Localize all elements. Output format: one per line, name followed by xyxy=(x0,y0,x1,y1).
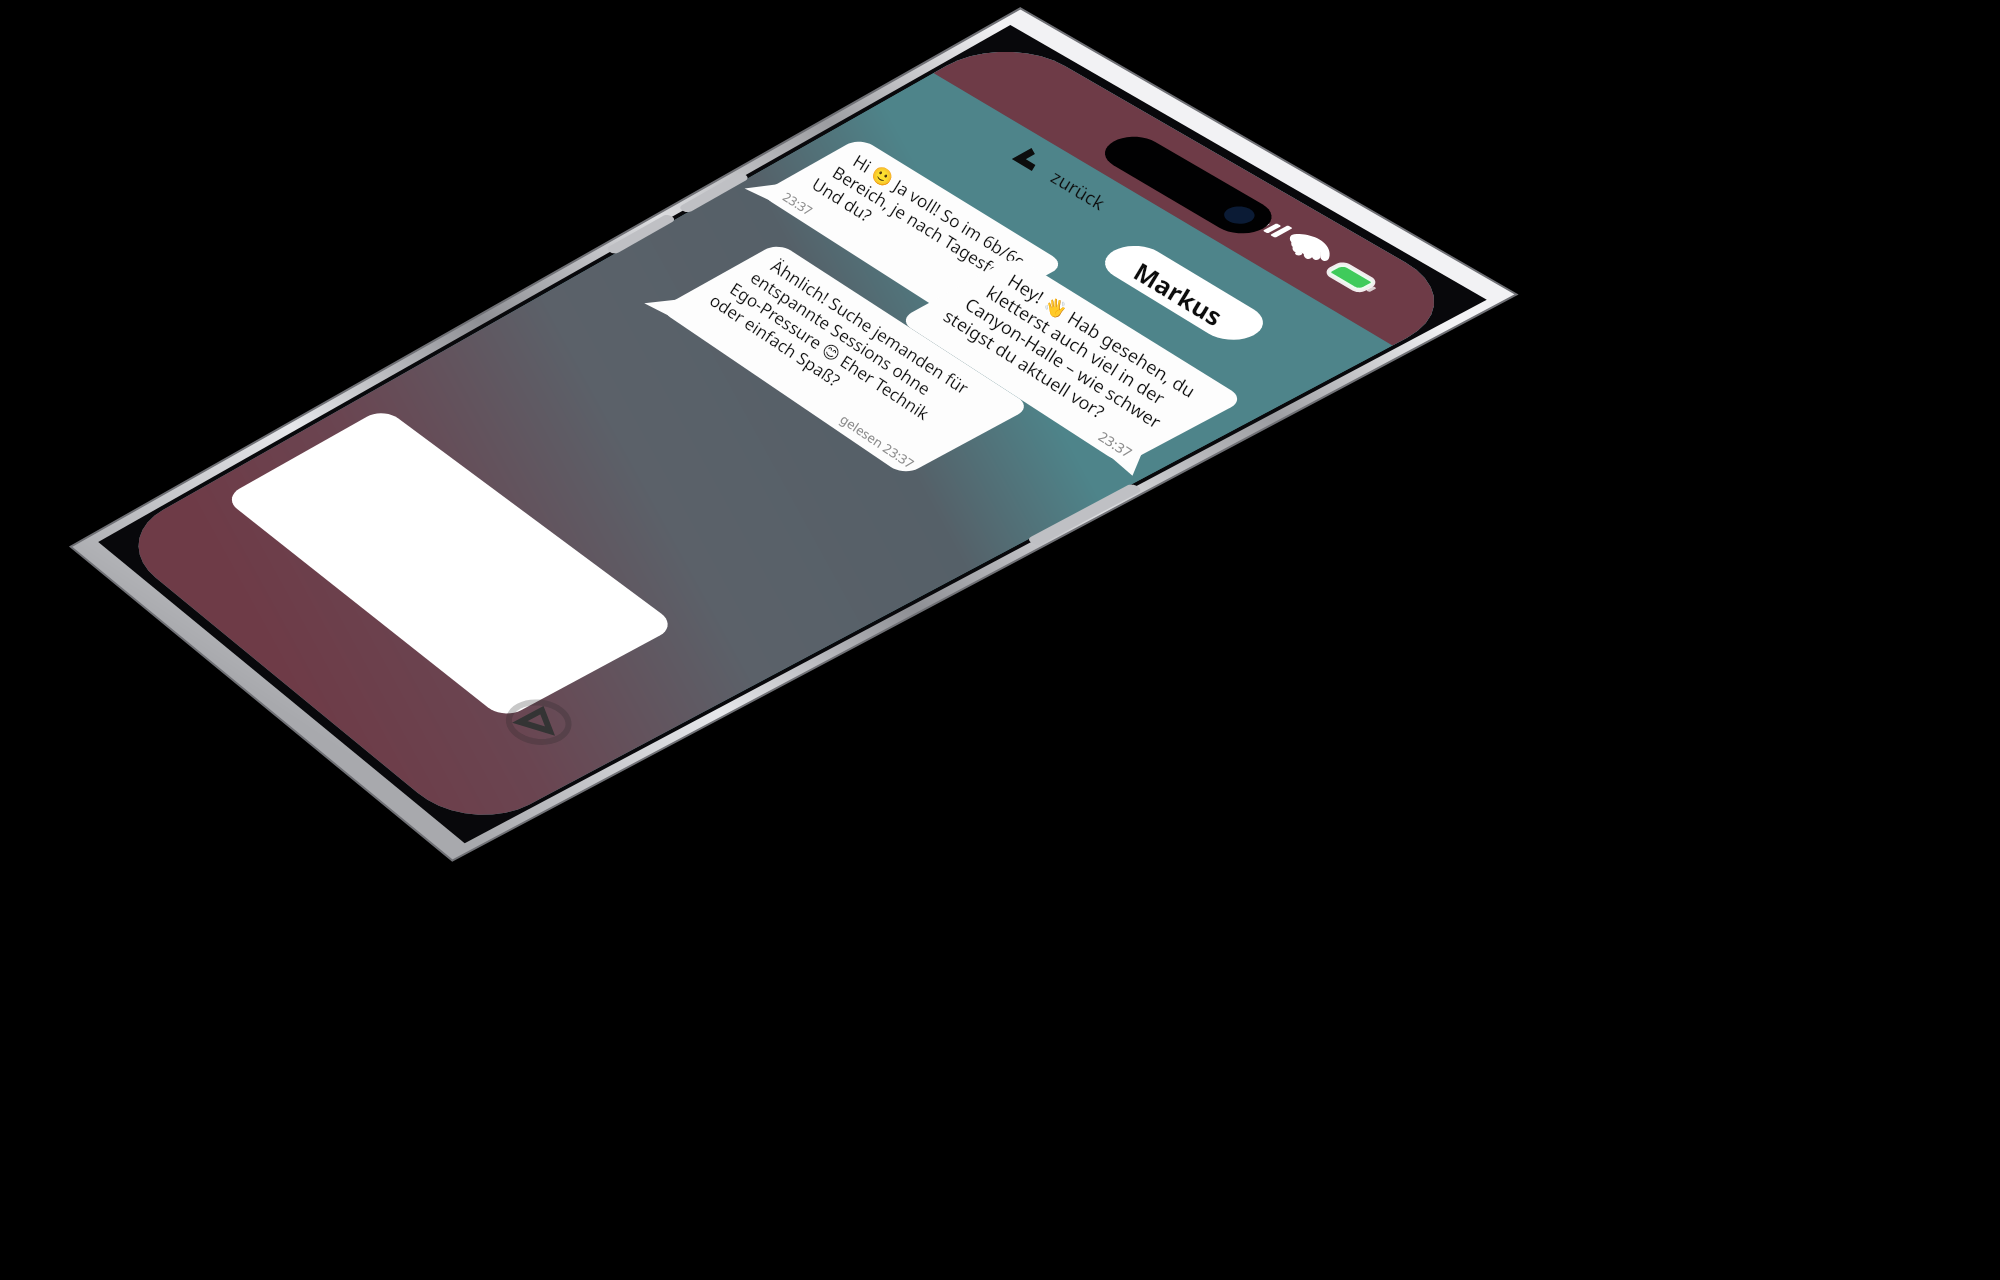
button[interactable]: Markus xyxy=(1130,150,1310,245)
button[interactable]: Zurück xyxy=(950,80,1080,150)
button[interactable]: Senden xyxy=(530,730,606,798)
button[interactable]: Nachricht schreiben xyxy=(150,490,600,790)
button[interactable]: Info xyxy=(1340,272,1404,332)
